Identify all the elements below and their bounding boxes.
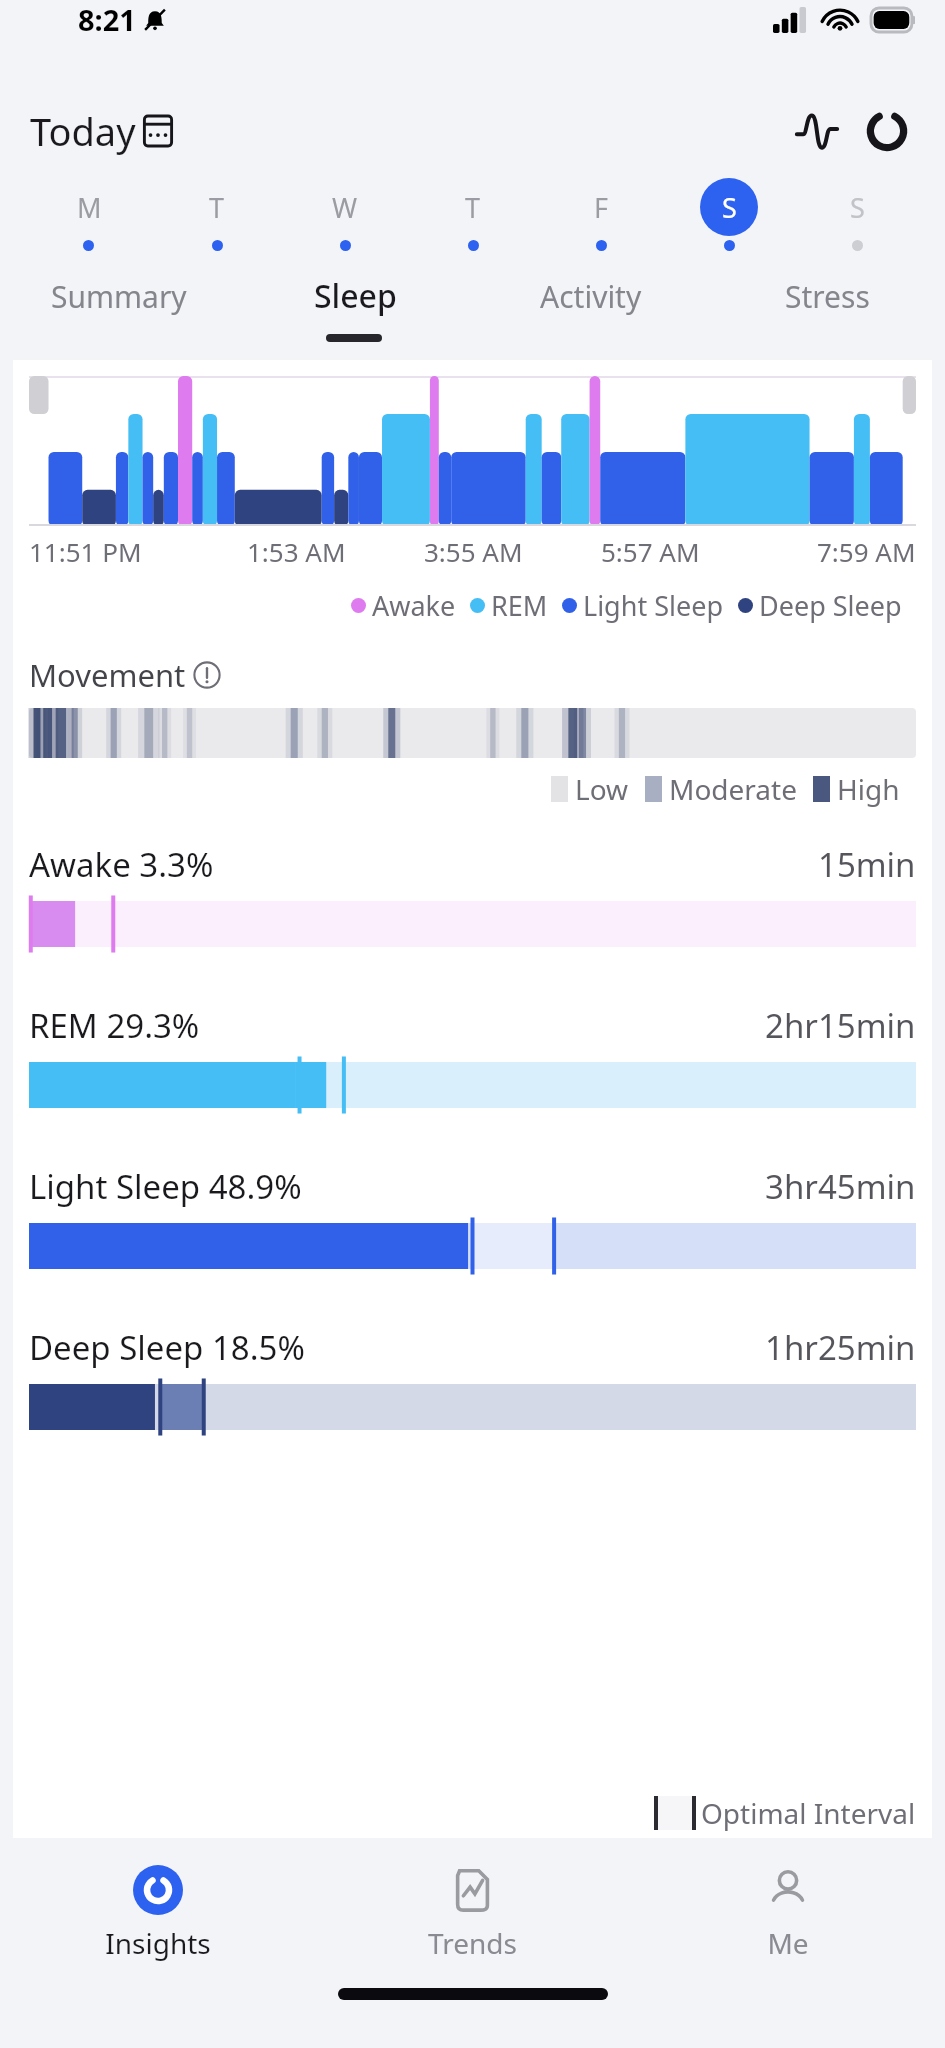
button[interactable]: Trends	[315, 1838, 630, 1988]
staticText: S	[850, 189, 865, 226]
staticText: F	[594, 189, 609, 226]
button[interactable]: Activity	[473, 258, 709, 334]
button[interactable]: M	[24, 170, 153, 258]
staticText: 8:21	[78, 0, 136, 39]
staticText: T	[209, 189, 225, 226]
staticText: 3:55 AM	[424, 534, 523, 569]
staticText: M	[77, 189, 102, 226]
staticText: Today	[30, 105, 136, 157]
button[interactable]: Sync	[859, 103, 915, 159]
button[interactable]: S	[793, 170, 921, 258]
button[interactable]: Insights	[0, 1838, 315, 1988]
staticText: Me	[767, 1924, 809, 1962]
staticText: Light Sleep 48.9%	[29, 1164, 302, 1209]
staticText: 1:53 AM	[247, 534, 346, 569]
staticText: REM 29.3%	[29, 1003, 200, 1048]
staticText: Awake	[372, 587, 456, 624]
staticText: Stress	[785, 276, 870, 317]
staticText: Deep Sleep	[759, 587, 902, 624]
button[interactable]: T	[409, 170, 537, 258]
button[interactable]: F	[537, 170, 665, 258]
staticText: 2hr15min	[765, 1003, 916, 1048]
staticText: Awake 3.3%	[29, 842, 214, 887]
button[interactable]: T	[153, 170, 281, 258]
staticText: 1hr25min	[765, 1325, 916, 1370]
button[interactable]: W	[281, 170, 409, 258]
staticText: Sleep	[314, 274, 397, 318]
button[interactable]: Today	[30, 105, 179, 157]
staticText: Summary	[51, 276, 187, 317]
button[interactable]: Movement info	[193, 661, 221, 689]
button[interactable]: Me	[630, 1838, 945, 1988]
staticText: Activity	[540, 276, 642, 317]
staticText: Movement	[29, 654, 186, 696]
button[interactable]: S	[665, 170, 793, 258]
button[interactable]: Sleep	[237, 258, 473, 334]
button[interactable]: Summary	[0, 258, 237, 334]
staticText: Trends	[428, 1924, 517, 1962]
staticText: Insights	[105, 1924, 211, 1962]
staticText: Deep Sleep 18.5%	[29, 1325, 305, 1370]
button[interactable]: Heart rate	[789, 103, 845, 159]
staticText: High	[837, 770, 900, 808]
staticText: 15min	[818, 842, 916, 887]
staticText: 11:51 PM	[29, 534, 142, 569]
staticText: 5:57 AM	[601, 534, 700, 569]
staticText: Moderate	[669, 770, 797, 808]
button[interactable]: Stress	[709, 258, 945, 334]
staticText: T	[465, 189, 481, 226]
staticText: Light Sleep	[583, 587, 724, 624]
staticText: W	[332, 189, 358, 226]
staticText: S	[722, 189, 737, 226]
staticText: Optimal Interval	[701, 1794, 916, 1832]
staticText: REM	[491, 587, 548, 624]
staticText: Low	[575, 770, 629, 808]
staticText: 7:59 AM	[817, 534, 916, 569]
staticText: 3hr45min	[765, 1164, 916, 1209]
